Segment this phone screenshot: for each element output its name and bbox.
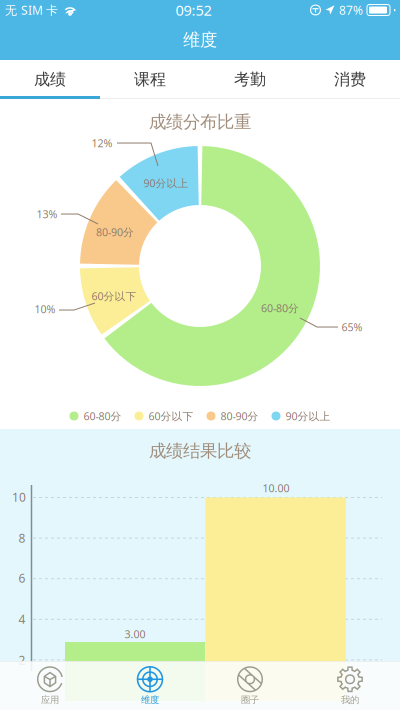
staticText: 60-80分	[83, 409, 121, 423]
button[interactable]: 考勤	[200, 60, 300, 99]
button[interactable]: 成绩	[0, 60, 100, 99]
button[interactable]: 课程	[100, 60, 200, 99]
button[interactable]: 消费	[300, 60, 400, 99]
staticText: 60分以下	[91, 289, 136, 303]
button[interactable]: 圈子	[200, 661, 300, 710]
staticText: 60分以下	[148, 409, 193, 423]
staticText: 2	[18, 652, 25, 668]
staticText: 维度	[183, 29, 217, 51]
staticText: 课程	[134, 70, 166, 89]
staticText: 60-80分	[261, 301, 299, 315]
button[interactable]: 应用	[0, 661, 100, 710]
staticText: 消费	[334, 70, 366, 89]
staticText: 80-90分	[220, 409, 258, 423]
staticText: 考勤	[234, 70, 266, 89]
staticText: 8	[18, 530, 25, 546]
staticText: 4	[18, 611, 25, 627]
staticText: 无 SIM 卡	[5, 2, 58, 18]
staticText: 成绩结果比较	[149, 440, 251, 462]
staticText: 87%	[339, 2, 363, 18]
staticText: 10	[12, 489, 26, 505]
staticText: 90分以上	[143, 176, 188, 190]
staticText: 应用	[41, 694, 59, 706]
staticText: 13%	[36, 207, 57, 221]
staticText: 65%	[341, 320, 362, 334]
staticText: 09:52	[175, 0, 211, 20]
staticText: 12%	[91, 136, 112, 150]
staticText: 维度	[141, 694, 159, 706]
staticText: 10%	[34, 302, 55, 316]
staticText: 成绩	[34, 70, 66, 89]
staticText: 6	[18, 570, 25, 586]
staticText: 3.00	[124, 627, 145, 641]
staticText: 10.00	[262, 481, 289, 495]
staticText: 90分以上	[285, 409, 330, 423]
button[interactable]: 我的	[300, 661, 400, 710]
staticText: 我的	[341, 694, 359, 706]
staticText: 圈子	[241, 694, 259, 706]
button[interactable]: 维度	[100, 661, 200, 710]
staticText: 80-90分	[96, 225, 134, 239]
staticText: 成绩分布比重	[149, 111, 251, 133]
